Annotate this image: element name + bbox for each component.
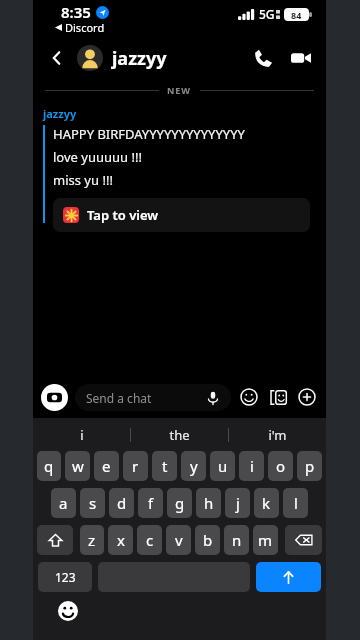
staticText: miss yu !!! — [53, 171, 113, 189]
staticText: j — [236, 493, 240, 513]
button[interactable]: Send a chat — [75, 384, 231, 411]
staticText: o — [276, 456, 286, 476]
staticText: NEW — [167, 84, 192, 96]
staticText: z — [88, 530, 96, 550]
staticText: n — [232, 530, 242, 550]
other: Shift — [48, 533, 63, 548]
staticText: i — [250, 456, 254, 476]
button[interactable]: Shift — [37, 525, 73, 555]
button[interactable]: g — [167, 488, 192, 518]
staticText: c — [146, 530, 154, 550]
staticText: t — [162, 456, 168, 476]
staticText: q — [44, 456, 54, 476]
button[interactable]: h — [196, 488, 221, 518]
button[interactable]: c — [137, 525, 162, 555]
staticText: s — [89, 493, 97, 513]
button[interactable]: o — [268, 451, 293, 481]
button[interactable]: Emoji — [238, 386, 260, 408]
button[interactable]: More — [296, 386, 318, 408]
button[interactable]: r — [123, 451, 148, 481]
button[interactable]: Camera — [41, 384, 68, 411]
button[interactable]: Send — [256, 562, 321, 592]
staticText: i — [80, 426, 84, 444]
button[interactable]: i — [33, 418, 130, 451]
staticText: r — [132, 456, 139, 476]
staticText: 123 — [55, 569, 76, 585]
staticText: the — [169, 426, 190, 444]
button[interactable]: z — [80, 525, 104, 555]
staticText: k — [262, 493, 271, 513]
button[interactable]: Call — [248, 43, 278, 73]
button[interactable]: n — [224, 525, 249, 555]
button[interactable]: Back — [43, 44, 71, 72]
button[interactable]: l — [283, 488, 308, 518]
button[interactable]: d — [109, 488, 134, 518]
button[interactable]: m — [253, 525, 278, 555]
button[interactable]: p — [297, 451, 322, 481]
staticText: h — [204, 493, 214, 513]
staticText: Tap to view — [87, 206, 159, 224]
staticText: Send a chat — [86, 390, 152, 406]
button[interactable]: j — [225, 488, 250, 518]
staticText: a — [59, 493, 68, 513]
staticText: jazzyy — [43, 106, 77, 121]
button[interactable]: f — [138, 488, 163, 518]
staticText: u — [218, 456, 228, 476]
button[interactable]: Profile — [77, 45, 103, 71]
button[interactable]: Stickers — [267, 386, 289, 408]
button[interactable]: q — [37, 451, 61, 481]
button[interactable]: b — [195, 525, 220, 555]
button[interactable]: v — [166, 525, 191, 555]
staticText: HAPPY BIRFDAYYYYYYYYYYYYYY — [53, 125, 245, 143]
staticText: d — [117, 493, 127, 513]
staticText: 8:35 — [61, 2, 91, 22]
button[interactable]: w — [65, 451, 90, 481]
staticText: Discord — [65, 20, 105, 35]
button[interactable]: k — [254, 488, 279, 518]
staticText: f — [148, 493, 154, 513]
staticText: 5G — [259, 6, 275, 22]
button[interactable]: u — [210, 451, 235, 481]
staticText: p — [305, 456, 315, 476]
other: Backspace — [295, 531, 313, 549]
staticText: v — [175, 530, 183, 550]
button[interactable]: i — [239, 451, 264, 481]
button[interactable]: s — [80, 488, 105, 518]
button[interactable]: Backspace — [285, 525, 322, 555]
staticText: x — [117, 530, 125, 550]
button[interactable]: jazzyy — [112, 46, 167, 71]
staticText: m — [258, 530, 273, 550]
button[interactable]: y — [181, 451, 206, 481]
staticText: b — [203, 530, 213, 550]
staticText: i'm — [268, 426, 287, 444]
button[interactable]: a — [51, 488, 76, 518]
button[interactable]: 123 — [38, 562, 92, 592]
button[interactable]: the — [131, 418, 228, 451]
button[interactable]: x — [108, 525, 133, 555]
button[interactable]: Tap to view — [53, 198, 310, 232]
button[interactable]: e — [94, 451, 119, 481]
staticText: 84 — [291, 9, 302, 21]
button[interactable]: Video call — [286, 43, 316, 73]
staticText: e — [102, 456, 111, 476]
staticText: y — [190, 456, 198, 476]
staticText: love yuuuuu !!! — [53, 148, 142, 166]
button[interactable]: t — [152, 451, 177, 481]
button[interactable]: Emoji keyboard — [57, 600, 79, 622]
button[interactable]: i'm — [229, 418, 326, 451]
staticText: l — [294, 493, 298, 513]
staticText: g — [175, 493, 185, 513]
staticText: w — [72, 456, 84, 476]
